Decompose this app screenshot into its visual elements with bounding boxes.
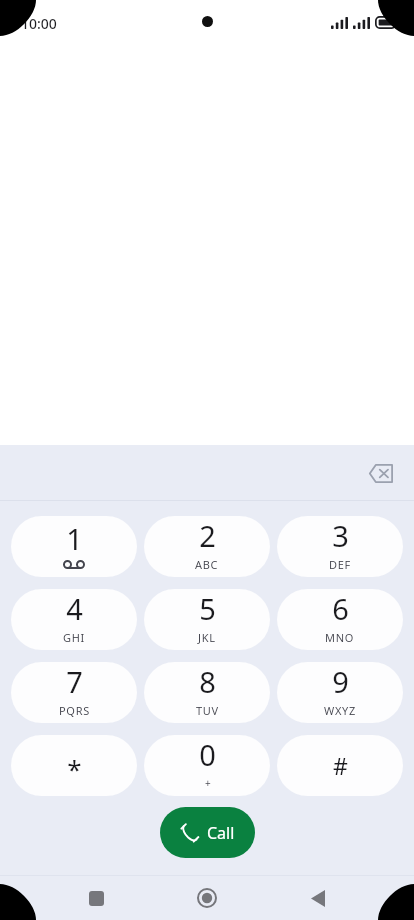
button[interactable]: # [277,735,403,796]
button[interactable]: 1 [11,516,137,577]
button[interactable]: Home [185,876,229,920]
staticText: 3 [332,516,349,555]
staticText: 0 [199,735,216,774]
staticText: + [205,776,211,790]
staticText: 5 [199,589,216,628]
button[interactable]: Backspace [357,450,403,496]
staticText: 1 [66,519,83,558]
button[interactable]: 7 [11,662,137,723]
button[interactable]: Recent apps [74,876,118,920]
staticText: 7 [66,662,83,701]
staticText: MNO [325,630,355,645]
button[interactable]: 9 [277,662,403,723]
button[interactable]: 3 [277,516,403,577]
staticText: * [67,751,82,786]
button[interactable]: 2 [144,516,270,577]
staticText: 6 [332,589,349,628]
staticText: 10:00 [21,14,57,33]
staticText: JKL [198,630,216,645]
button[interactable]: Call [160,807,255,858]
button[interactable]: 4 [11,589,137,650]
button[interactable]: 6 [277,589,403,650]
button[interactable]: 0 [144,735,270,796]
staticText: WXYZ [324,703,356,718]
staticText: PQRS [59,703,90,718]
staticText: TUV [196,703,219,718]
staticText: 2 [199,516,216,555]
button[interactable]: * [11,735,137,796]
button[interactable]: 5 [144,589,270,650]
staticText: 9 [332,662,349,701]
staticText: GHI [63,630,85,645]
button[interactable]: Back [296,876,340,920]
button[interactable]: 8 [144,662,270,723]
staticText: 8 [199,662,216,701]
staticText: DEF [329,557,351,572]
staticText: Call [207,822,235,844]
staticText: # [333,750,348,781]
staticText: 4 [66,589,83,628]
staticText: ABC [195,557,219,572]
